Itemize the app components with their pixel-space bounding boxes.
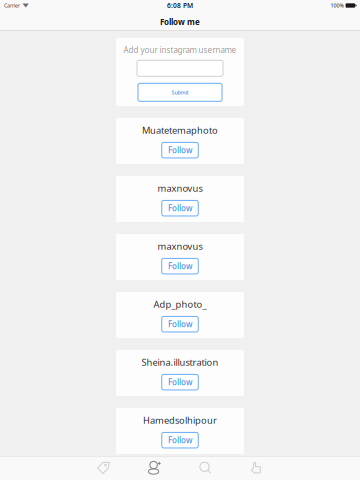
staticText: Carrier	[4, 2, 20, 9]
button[interactable]: Tags	[78, 456, 129, 480]
staticText: Add your instagram username	[123, 45, 236, 55]
button[interactable]: Follow	[162, 142, 198, 158]
staticText: Sheina.illustration	[141, 356, 218, 368]
staticText: Follow	[168, 261, 192, 271]
staticText: Follow	[168, 203, 192, 213]
button[interactable]: Follow	[162, 200, 198, 216]
staticText: Follow me	[160, 17, 200, 27]
staticText: maxnovus	[157, 240, 202, 252]
staticText: Follow	[168, 377, 192, 387]
staticText: Muatetemaphoto	[142, 124, 218, 136]
staticText: Follow	[168, 145, 192, 155]
button[interactable]: Follow	[162, 374, 198, 390]
staticText: Hamedsolhipour	[143, 414, 217, 426]
staticText: 100%	[330, 2, 343, 9]
button[interactable]: Follow	[162, 316, 198, 332]
staticText: Adp_photo_	[153, 298, 206, 310]
button[interactable]: Touch	[231, 456, 282, 480]
staticText: maxnovus	[157, 182, 202, 194]
staticText: Submit	[171, 89, 188, 96]
button[interactable]: Follow	[129, 456, 180, 480]
staticText: 6:08 PM	[167, 1, 193, 10]
button[interactable]: Search	[180, 456, 231, 480]
staticText: Follow	[168, 435, 192, 445]
staticText: Follow	[168, 319, 192, 329]
button[interactable]: Follow	[162, 258, 198, 274]
button[interactable]: Follow	[162, 432, 198, 448]
button[interactable]: Submit	[138, 83, 222, 101]
